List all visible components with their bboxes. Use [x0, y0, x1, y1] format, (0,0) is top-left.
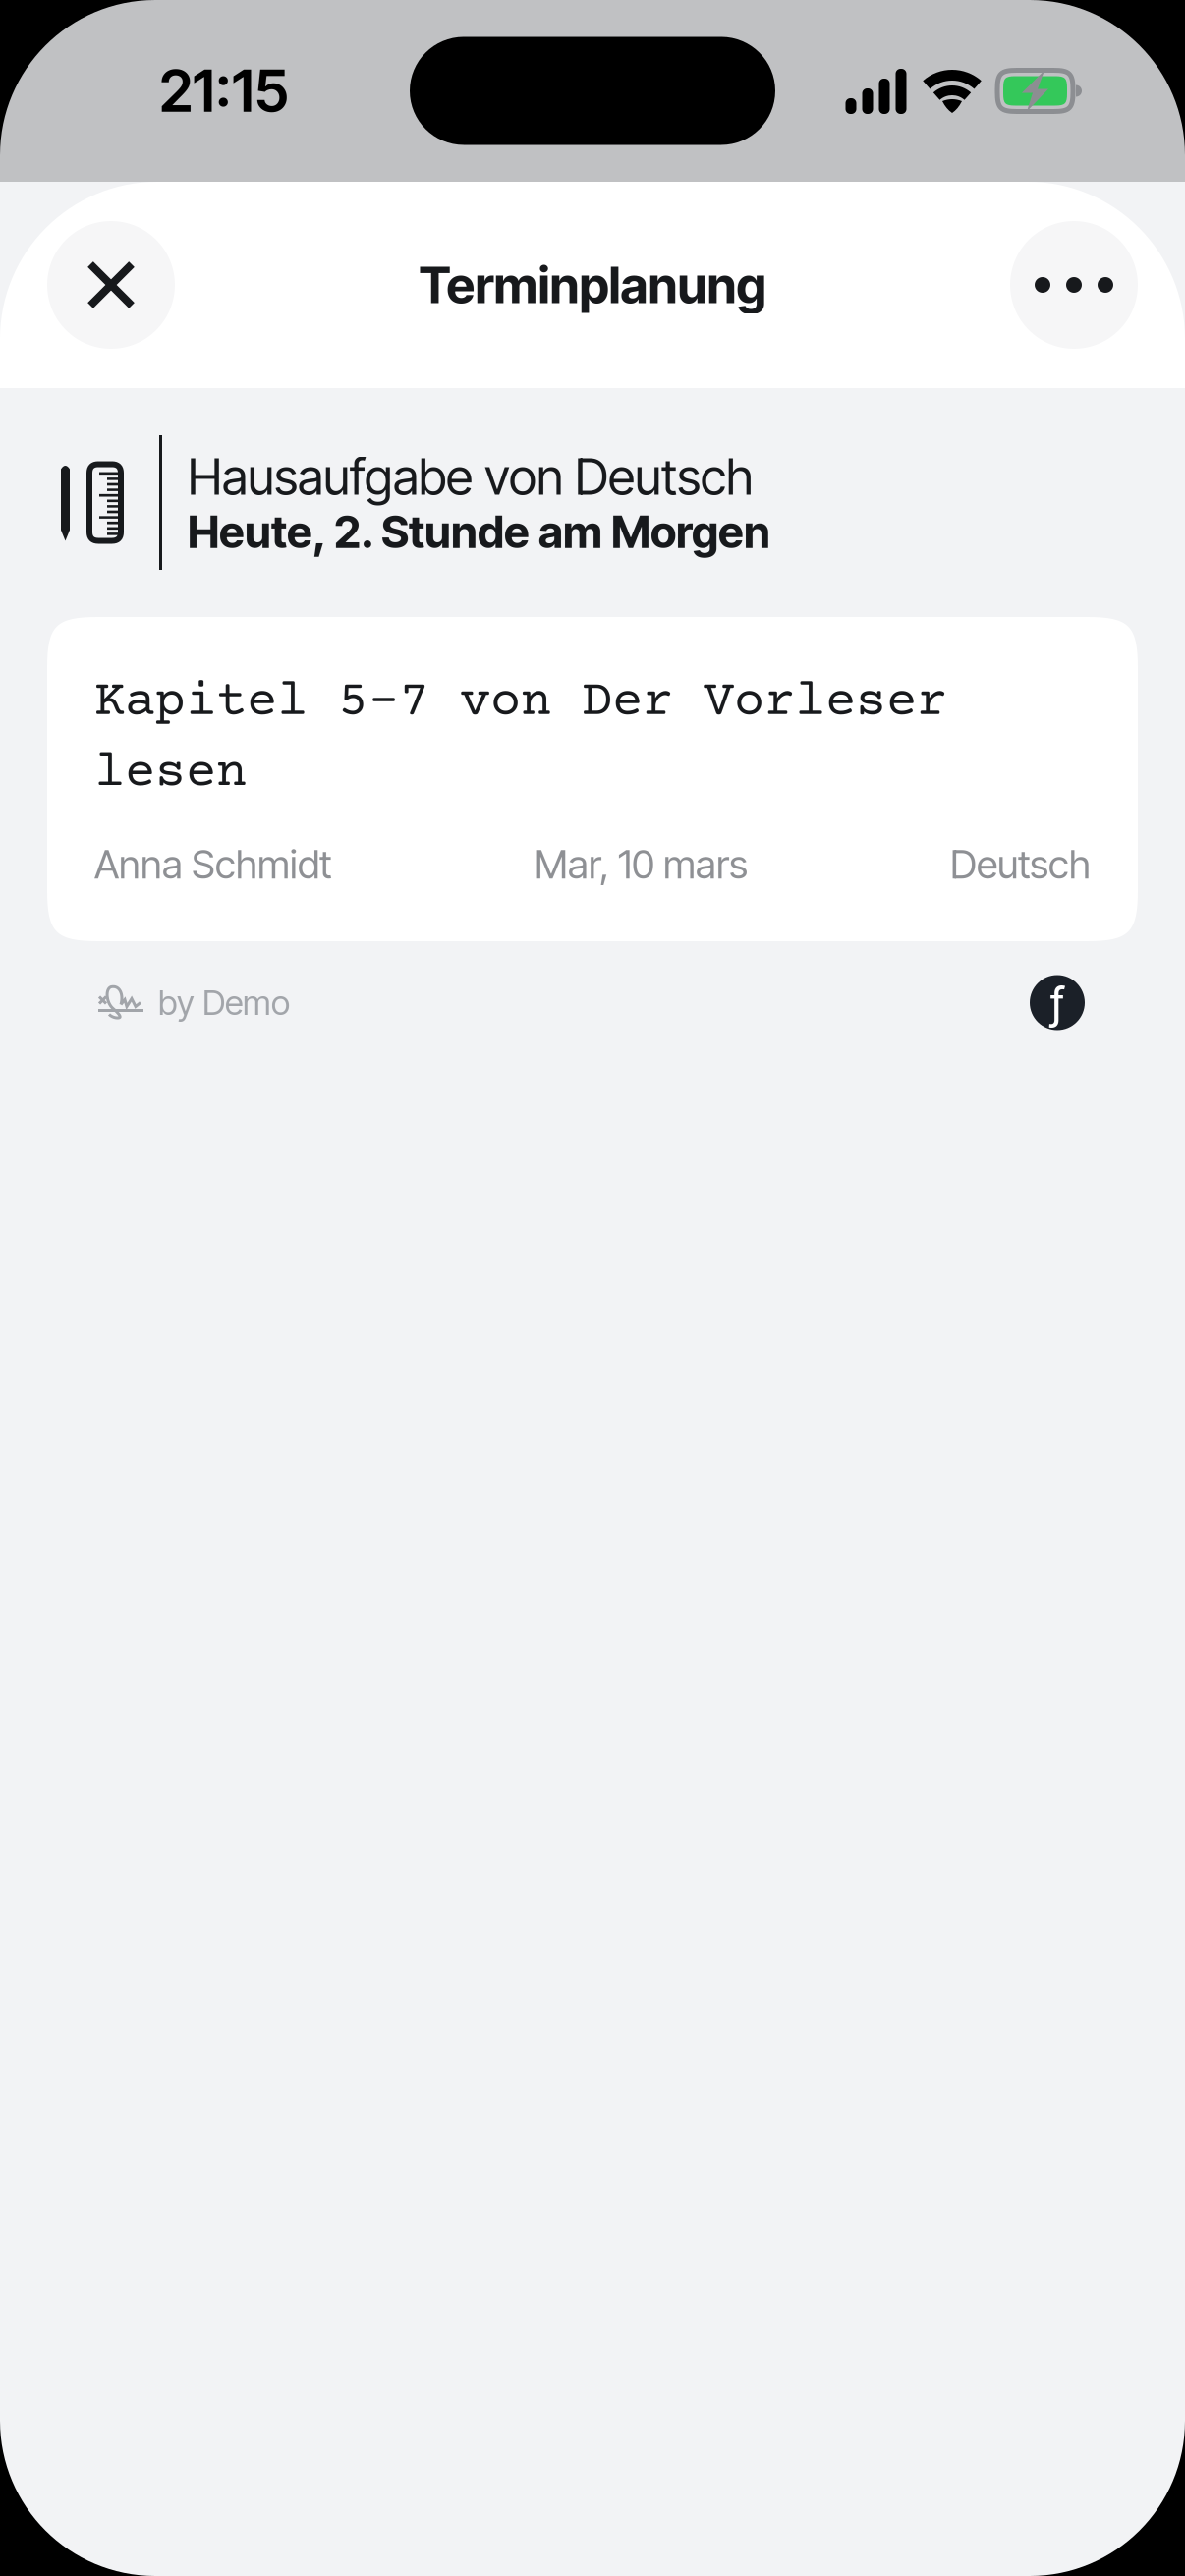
staticText: Heute, 2. Stunde am Morgen [188, 505, 770, 559]
staticText: Kapitel 5-7 von Der Vorleser lesen [94, 674, 947, 802]
button[interactable]: Close [47, 221, 175, 349]
button[interactable]: Open app [1030, 975, 1085, 1030]
staticText: by Demo [158, 982, 290, 1023]
staticText: Terminplanung [419, 255, 766, 315]
button[interactable]: More options [1010, 221, 1138, 349]
staticText: Mar, 10 mars [535, 841, 748, 888]
staticText: 21:15 [159, 56, 289, 126]
staticText: Hausaufgabe von Deutsch [188, 446, 754, 507]
staticText: Deutsch [950, 841, 1091, 888]
staticText: Anna Schmidt [94, 841, 332, 888]
staticText: ƒ [1048, 976, 1066, 1030]
